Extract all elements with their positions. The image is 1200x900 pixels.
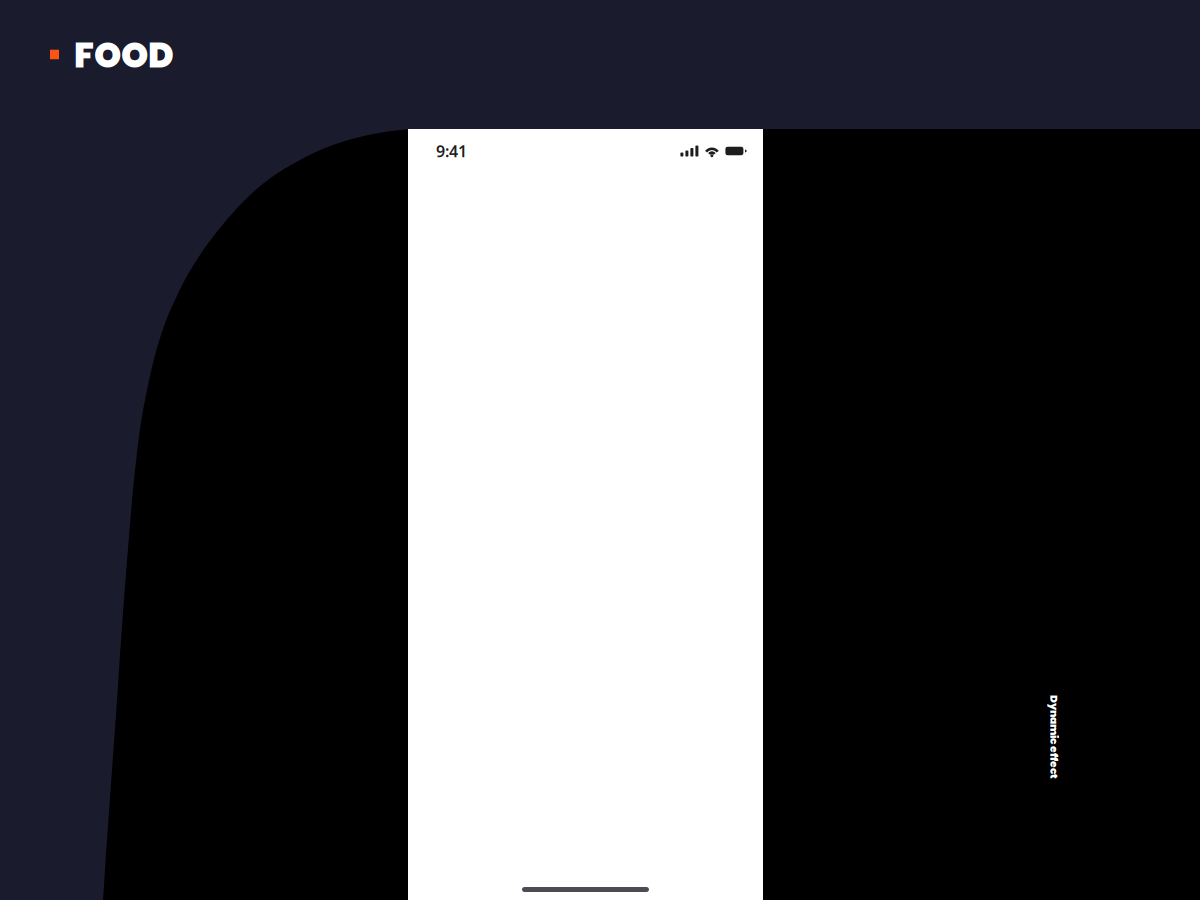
button[interactable]: FOOD [50,31,174,79]
staticText: FOOD [74,31,174,79]
staticText: 9:41 [436,140,467,162]
staticText: Dynamic effect [1012,729,1096,744]
